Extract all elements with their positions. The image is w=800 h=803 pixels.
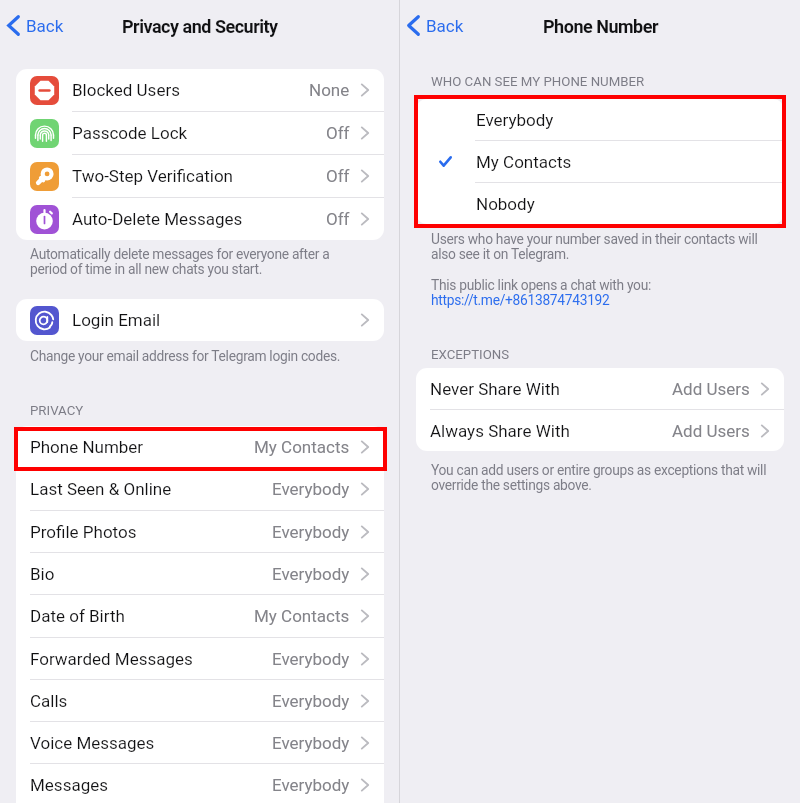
button[interactable]: Auto-Delete Messages: [16, 198, 384, 240]
staticText: Add Users: [672, 421, 750, 441]
staticText: Phone Number: [30, 437, 144, 457]
staticText: Last Seen & Online: [30, 479, 172, 499]
button[interactable]: Profile Photos: [16, 511, 384, 552]
button[interactable]: Everybody: [416, 99, 784, 140]
button[interactable]: Last Seen & Online: [16, 468, 384, 510]
button[interactable]: Forwarded Messages: [16, 638, 384, 679]
staticText: Calls: [30, 691, 68, 711]
staticText: Never Share With: [430, 379, 560, 399]
staticText: Back: [426, 16, 464, 36]
staticText: Everybody: [272, 733, 350, 753]
staticText: Phone Number: [543, 16, 658, 37]
button[interactable]: Calls: [16, 680, 384, 721]
staticText: Everybody: [476, 110, 554, 130]
staticText: None: [309, 80, 350, 100]
staticText: Back: [26, 16, 64, 36]
staticText: My Contacts: [254, 606, 350, 626]
staticText: Off: [326, 209, 350, 229]
staticText: Forwarded Messages: [30, 649, 193, 669]
staticText: WHO CAN SEE MY PHONE NUMBER: [431, 74, 645, 90]
staticText: Everybody: [272, 775, 350, 795]
button[interactable]: Back: [7, 9, 64, 42]
button[interactable]: Blocked Users: [16, 69, 384, 111]
staticText: Nobody: [476, 194, 535, 214]
staticText: You can add users or entire groups as ex…: [431, 462, 771, 493]
button[interactable]: Two-Step Verification: [16, 155, 384, 197]
staticText: Everybody: [272, 522, 350, 542]
staticText: Passcode Lock: [72, 123, 188, 143]
staticText: PRIVACY: [30, 403, 84, 419]
staticText: Date of Birth: [30, 606, 125, 626]
staticText: Profile Photos: [30, 522, 137, 542]
button[interactable]: Messages: [16, 764, 384, 803]
button[interactable]: Never Share With: [416, 368, 784, 409]
staticText: Always Share With: [430, 421, 570, 441]
button[interactable]: Nobody: [416, 183, 784, 224]
button[interactable]: https://t.me/+8613874743192: [431, 292, 610, 308]
button[interactable]: Bio: [16, 553, 384, 594]
staticText: Blocked Users: [72, 80, 180, 100]
button[interactable]: Selected: [416, 141, 784, 182]
staticText: Messages: [30, 775, 108, 795]
button[interactable]: Voice Messages: [16, 722, 384, 763]
staticText: My Contacts: [254, 437, 350, 457]
staticText: This public link opens a chat with you:: [431, 277, 652, 293]
staticText: Users who have your number saved in thei…: [431, 231, 771, 262]
staticText: Auto-Delete Messages: [72, 209, 243, 229]
staticText: Off: [326, 166, 350, 186]
staticText: Everybody: [272, 691, 350, 711]
button[interactable]: Passcode Lock: [16, 112, 384, 154]
staticText: EXCEPTIONS: [431, 347, 510, 363]
button[interactable]: Back: [407, 9, 464, 42]
staticText: Automatically delete messages for everyo…: [30, 246, 338, 277]
staticText: Two-Step Verification: [72, 166, 233, 186]
staticText: Everybody: [272, 479, 350, 499]
staticText: Privacy and Security: [122, 16, 278, 37]
staticText: Everybody: [272, 564, 350, 584]
staticText: Login Email: [72, 310, 161, 330]
button[interactable]: Phone Number: [16, 426, 384, 467]
button[interactable]: Date of Birth: [16, 595, 384, 637]
staticText: Add Users: [672, 379, 750, 399]
staticText: Voice Messages: [30, 733, 155, 753]
staticText: Change your email address for Telegram l…: [30, 348, 341, 364]
button[interactable]: Always Share With: [416, 410, 784, 451]
staticText: Everybody: [272, 649, 350, 669]
staticText: My Contacts: [476, 152, 572, 172]
staticText: Off: [326, 123, 350, 143]
other: Selected: [439, 156, 452, 167]
button[interactable]: Login Email: [16, 299, 384, 341]
staticText: Bio: [30, 564, 55, 584]
